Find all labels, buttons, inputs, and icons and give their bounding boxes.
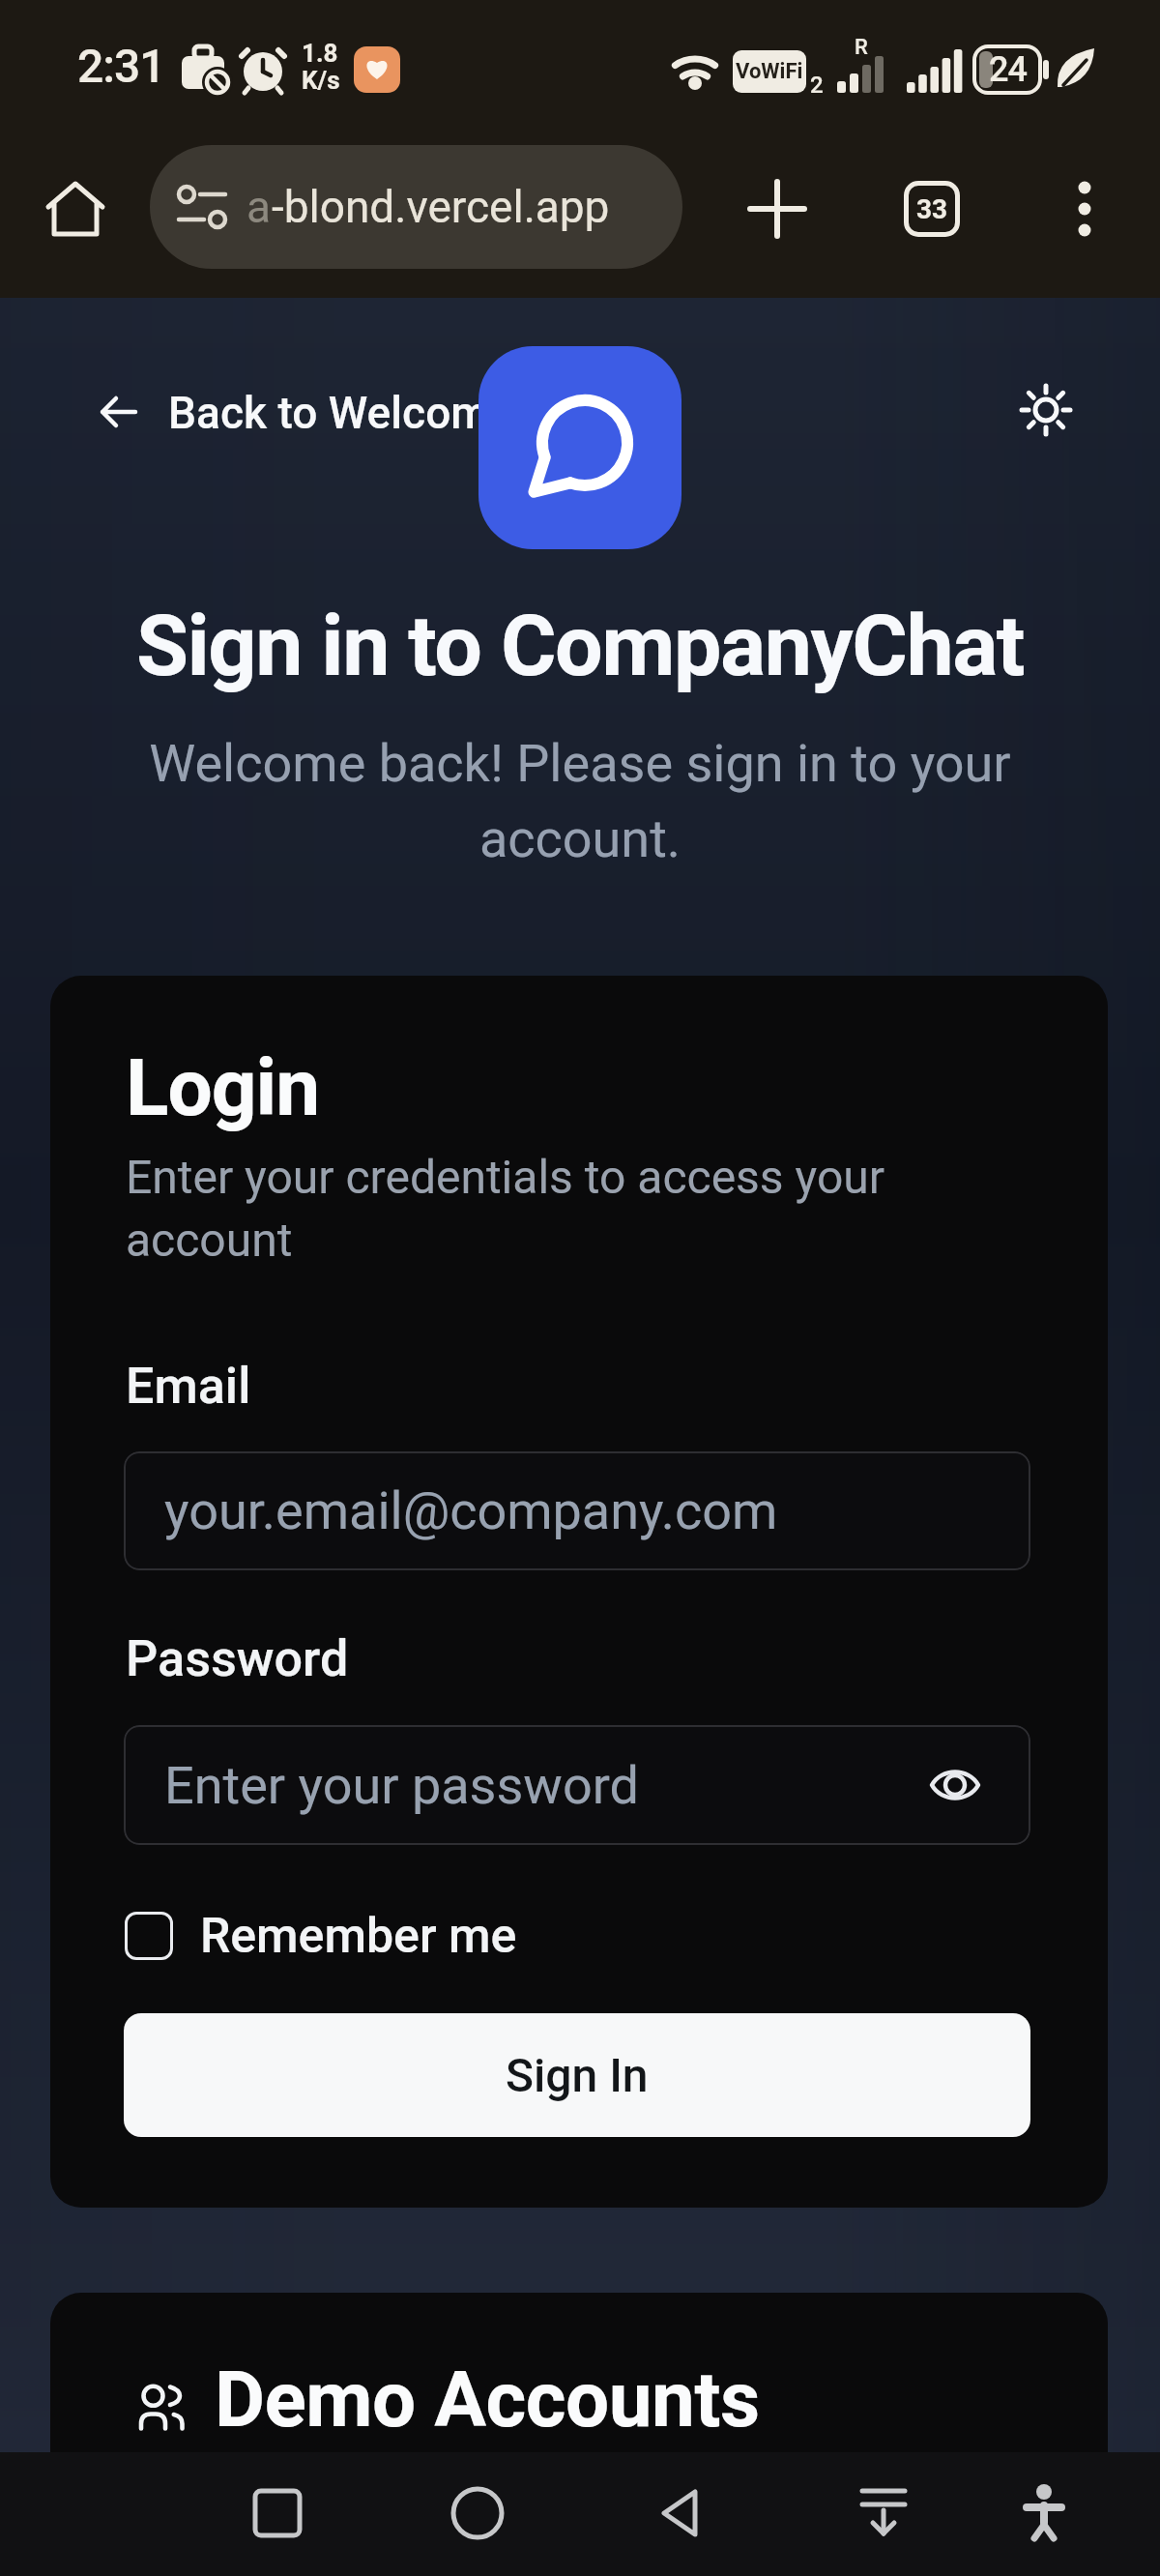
button[interactable]: [658, 2488, 709, 2538]
staticText: Demo Accounts: [215, 2355, 760, 2445]
staticText: 1.8 K/s: [302, 39, 340, 96]
button[interactable]: [1017, 2484, 1071, 2538]
staticText: a: [246, 181, 272, 233]
staticText: 2:31: [77, 39, 165, 93]
button[interactable]: [1021, 385, 1071, 435]
staticText: Enter your password: [164, 1755, 639, 1816]
button[interactable]: Enter your password: [124, 1725, 1030, 1845]
staticText: Login: [126, 1041, 320, 1134]
button[interactable]: [858, 2487, 909, 2537]
staticText: 24: [989, 49, 1027, 90]
staticText: Enter your credentials to access your ac…: [126, 1150, 884, 1268]
button[interactable]: Back to Welcome: [97, 387, 514, 437]
button[interactable]: 33: [904, 181, 960, 237]
staticText: R: [855, 35, 868, 60]
staticText: Email: [126, 1357, 251, 1416]
staticText: VoWiFi: [736, 59, 803, 84]
button[interactable]: [253, 2489, 302, 2537]
staticText: Password: [126, 1629, 349, 1688]
button[interactable]: a: [150, 145, 682, 269]
button[interactable]: Demo Accounts: [50, 2293, 1108, 2452]
staticText: Welcome back! Please sign in to your acc…: [0, 733, 1160, 869]
button[interactable]: [1063, 180, 1106, 238]
button[interactable]: Remember me: [125, 1907, 517, 1965]
button[interactable]: Sign In: [124, 2013, 1030, 2137]
button[interactable]: [748, 180, 806, 238]
button[interactable]: your.email@company.com: [124, 1451, 1030, 1570]
staticText: Remember me: [200, 1908, 517, 1965]
staticText: Back to Welcome: [168, 387, 514, 437]
staticText: 2: [810, 72, 824, 99]
button[interactable]: [44, 178, 106, 240]
staticText: Sign in to CompanyChat: [0, 596, 1160, 695]
staticText: your.email@company.com: [164, 1480, 778, 1541]
staticText: Sign In: [506, 2048, 649, 2102]
staticText: 33: [916, 193, 948, 225]
staticText: -blond.vercel.app: [272, 181, 610, 233]
button[interactable]: [451, 2487, 504, 2539]
